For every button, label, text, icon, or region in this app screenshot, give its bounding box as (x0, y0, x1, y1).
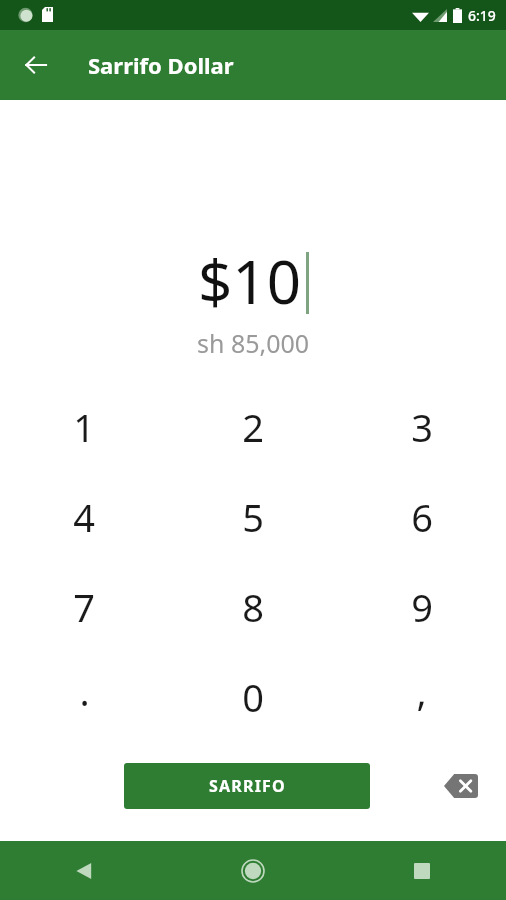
staticText: 1 (73, 401, 95, 453)
button[interactable]: Back (0, 841, 168, 900)
staticText: 9 (411, 581, 433, 633)
staticText: . (79, 665, 90, 717)
button[interactable]: 2 (168, 382, 337, 472)
staticText: , (416, 665, 427, 717)
staticText: Sarrifo Dollar (88, 50, 234, 80)
staticText: sh 85,000 (197, 326, 310, 360)
staticText: 0 (242, 671, 264, 723)
button[interactable]: 5 (168, 472, 337, 562)
staticText: 3 (411, 401, 433, 453)
staticText: 5 (242, 491, 264, 543)
button[interactable]: SARRIFO (124, 763, 370, 809)
button[interactable]: 4 (0, 472, 168, 562)
staticText: 4 (73, 491, 95, 543)
button[interactable]: 1 (0, 382, 168, 472)
staticText: $10 (198, 240, 301, 322)
button[interactable]: Back (10, 39, 62, 91)
button[interactable]: Recents (337, 841, 506, 900)
staticText: 2 (242, 401, 264, 453)
button[interactable]: 3 (337, 382, 506, 472)
button[interactable]: , (337, 652, 506, 742)
button[interactable]: Backspace (438, 763, 484, 809)
button[interactable]: Home (168, 841, 337, 900)
staticText: 6:19 (468, 6, 496, 25)
button[interactable]: . (0, 652, 168, 742)
button[interactable]: 9 (337, 562, 506, 652)
button[interactable]: 8 (168, 562, 337, 652)
staticText: 6 (411, 491, 433, 543)
button[interactable]: 6 (337, 472, 506, 562)
staticText: SARRIFO (209, 775, 286, 797)
staticText: 7 (73, 581, 95, 633)
button[interactable]: 7 (0, 562, 168, 652)
staticText: 8 (242, 581, 264, 633)
button[interactable]: 0 (168, 652, 337, 742)
